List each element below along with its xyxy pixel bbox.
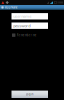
staticText: username [13, 14, 31, 19]
staticText: Login [26, 92, 34, 96]
staticText: password [13, 23, 30, 28]
staticText: Remember me [17, 33, 37, 37]
button[interactable]: Login [11, 91, 48, 98]
staticText: AppName [5, 6, 18, 9]
button[interactable]: password [11, 22, 48, 29]
button[interactable]: username [11, 13, 48, 19]
button[interactable]: Remember me [12, 33, 37, 37]
